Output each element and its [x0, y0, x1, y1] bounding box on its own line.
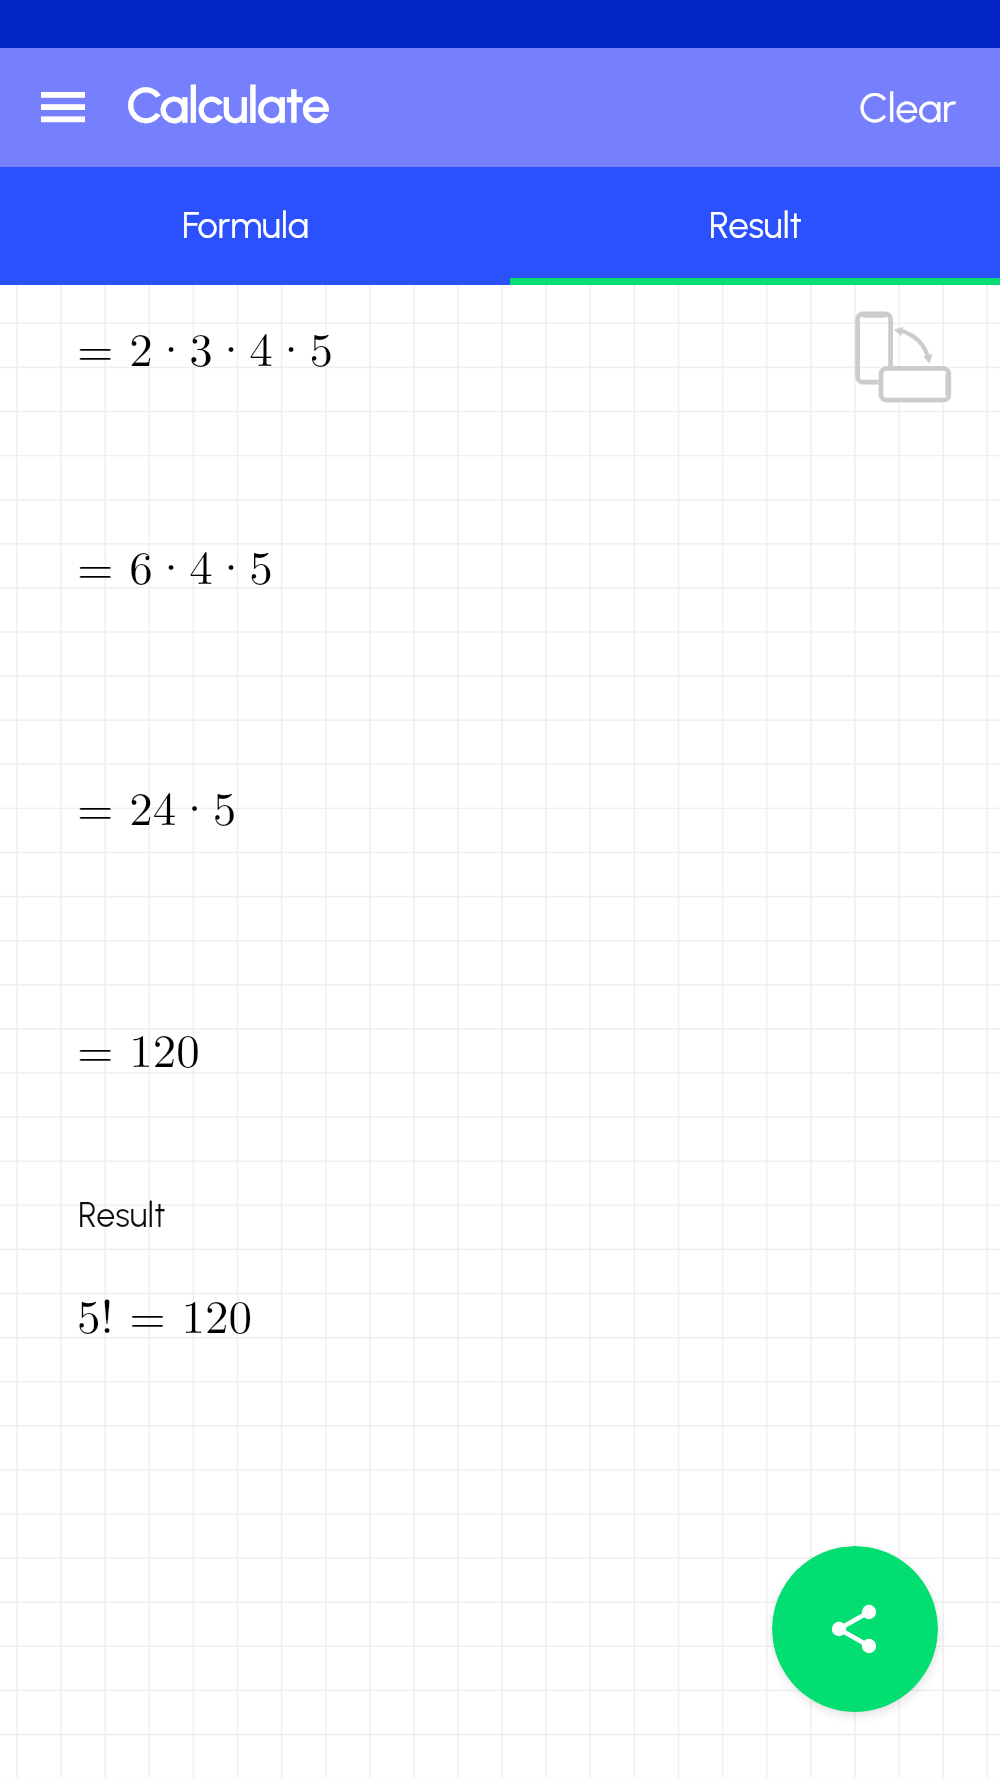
- staticText: = 24·5: [77, 772, 237, 839]
- button[interactable]: Open navigation menu: [18, 71, 108, 143]
- button[interactable]: Formula: [0, 167, 490, 285]
- staticText: Calculate: [127, 75, 330, 134]
- staticText: Result: [78, 1195, 166, 1236]
- staticText: Clear: [859, 83, 957, 132]
- button[interactable]: Share: [772, 1546, 938, 1712]
- staticText: = 6·4·5: [77, 531, 273, 598]
- button[interactable]: Clear: [838, 62, 978, 152]
- staticText: Result: [709, 204, 802, 247]
- staticText: 5! = 120: [77, 1280, 252, 1347]
- button[interactable]: Result: [510, 167, 1000, 285]
- staticText: = 120: [77, 1014, 200, 1081]
- other: Rotate device: [845, 300, 965, 410]
- staticText: = 2·3·4·5: [77, 313, 333, 380]
- staticText: Formula: [182, 204, 309, 247]
